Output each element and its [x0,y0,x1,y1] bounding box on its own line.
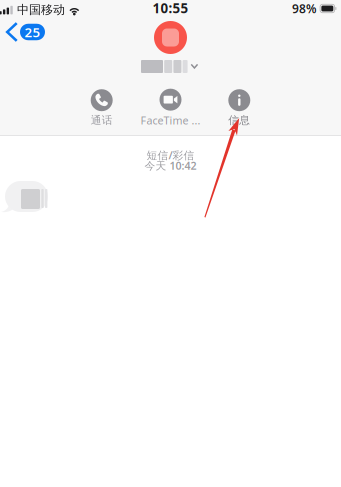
button[interactable]: Back, 25 unread [0,17,53,47]
staticText: FaceTime ... [140,113,200,127]
staticText: 10:55 [152,0,188,17]
staticText: 中国移动 [17,2,65,17]
button[interactable]: Contact details [0,21,341,73]
staticText: 通话 [91,114,113,127]
button[interactable]: 通话 [70,90,134,126]
staticText: 今天 10:42 [144,158,196,173]
button[interactable]: 信息 [207,90,271,126]
staticText: 25 [24,23,40,41]
staticText: 短信/彩信 [146,148,194,162]
staticText: 信息 [228,114,250,127]
button[interactable]: FaceTime [138,90,202,126]
staticText: 98% [292,0,317,16]
